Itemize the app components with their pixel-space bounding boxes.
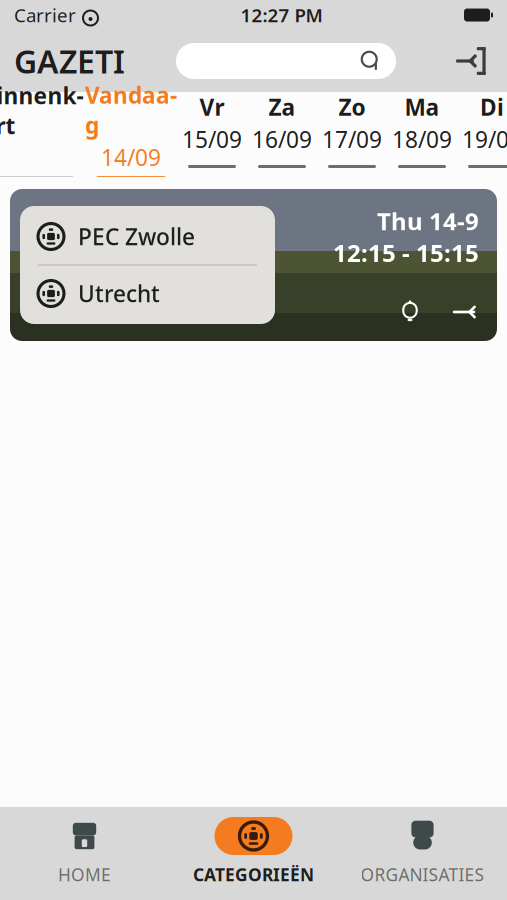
staticText: Carrier	[14, 3, 76, 27]
button[interactable]: Ma	[387, 92, 457, 177]
button[interactable]: HOME	[0, 817, 169, 886]
staticText: Ma	[404, 92, 439, 122]
button[interactable]: Vr	[177, 92, 247, 177]
button[interactable]: Binnenkort	[0, 92, 85, 177]
staticText: Zo	[338, 92, 365, 122]
staticText: GAZETI	[14, 40, 125, 82]
staticText: Vr	[199, 92, 224, 122]
staticText: 17/09	[322, 124, 382, 154]
staticText: CATEGORIEËN	[193, 863, 314, 886]
staticText: Utrecht	[78, 278, 160, 308]
button[interactable]: Notify me	[395, 297, 425, 327]
staticText: 14/09	[101, 142, 161, 172]
button[interactable]: CATEGORIEËN	[169, 817, 338, 886]
staticText: HOME	[58, 863, 111, 886]
staticText: ORGANISATIES	[360, 863, 484, 886]
staticText: 12:27 PM	[240, 3, 322, 27]
button[interactable]: Vandaag	[85, 92, 177, 177]
staticText: 16/09	[252, 124, 312, 154]
staticText: 15/09	[182, 124, 242, 154]
button[interactable]: Di	[457, 92, 507, 177]
button[interactable]: Open event	[449, 297, 479, 327]
staticText: PEC Zwolle	[78, 221, 195, 251]
staticText: Vandaag	[85, 80, 177, 140]
staticText: 19/09	[462, 124, 507, 154]
button[interactable]: Search	[176, 43, 396, 79]
staticText: Binnenkort	[0, 80, 83, 140]
button[interactable]: Zo	[317, 92, 387, 177]
staticText: Thu 14-9	[377, 205, 479, 237]
button[interactable]: ORGANISATIES	[338, 817, 507, 886]
button[interactable]: Log in	[447, 39, 491, 83]
button[interactable]: Za	[247, 92, 317, 177]
staticText: 12:15 - 15:15	[333, 237, 479, 269]
staticText: Za	[268, 92, 295, 122]
staticText: Di	[480, 92, 504, 122]
button[interactable]: PEC Zwolle	[0, 189, 507, 341]
staticText: 18/09	[392, 124, 452, 154]
